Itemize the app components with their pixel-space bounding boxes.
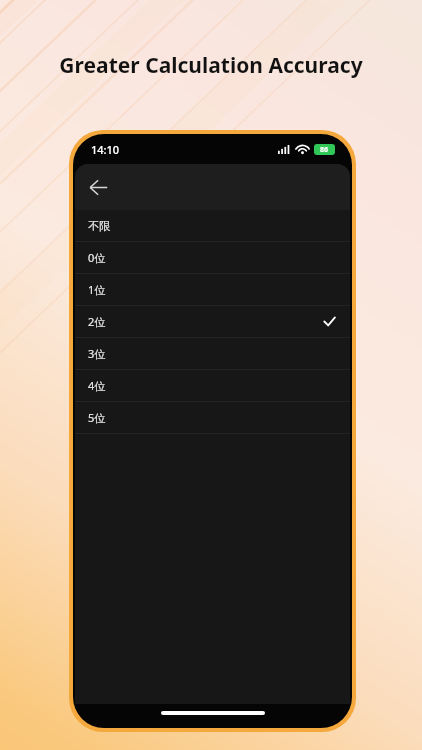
staticText: 14:10 xyxy=(91,142,120,157)
staticText: 3位 xyxy=(88,346,106,361)
staticText: 5位 xyxy=(88,410,106,425)
button[interactable]: 2位 xyxy=(75,306,350,337)
button[interactable]: 1位 xyxy=(75,274,350,305)
staticText: 0位 xyxy=(88,250,106,265)
staticText: 86 xyxy=(320,145,329,155)
staticText: 1位 xyxy=(88,282,106,297)
button[interactable]: Back xyxy=(80,169,116,205)
button[interactable]: 4位 xyxy=(75,370,350,401)
staticText: 2位 xyxy=(88,314,106,329)
staticText: 4位 xyxy=(88,378,106,393)
button[interactable]: 不限 xyxy=(75,210,350,241)
staticText: 不限 xyxy=(88,219,110,233)
button[interactable]: 3位 xyxy=(75,338,350,369)
staticText: Greater Calculation Accuracy xyxy=(0,51,422,80)
button[interactable]: 0位 xyxy=(75,242,350,273)
button[interactable]: 5位 xyxy=(75,402,350,433)
